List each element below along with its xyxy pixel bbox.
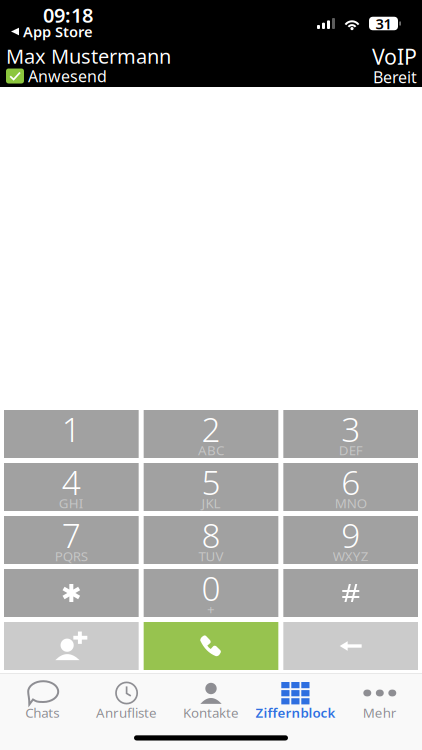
staticText: Ziffernblock — [255, 704, 335, 721]
staticText: Max Mustermann — [6, 43, 171, 69]
staticText: 09:18 — [43, 2, 93, 28]
button[interactable]: Delete — [283, 622, 418, 670]
button[interactable]: 0 — [144, 569, 278, 617]
button[interactable]: 3 — [283, 410, 418, 458]
staticText: 3 — [341, 407, 360, 451]
staticText: JKL — [201, 494, 220, 512]
staticText: VoIP — [372, 42, 417, 71]
staticText: Anwesend — [28, 65, 107, 87]
staticText: 6 — [341, 460, 360, 504]
staticText: TUV — [198, 547, 223, 565]
staticText: Kontakte — [183, 704, 239, 721]
button[interactable]: Kontakte — [169, 673, 253, 721]
button[interactable]: Add contact — [4, 622, 139, 670]
staticText: WXYZ — [333, 547, 369, 565]
button[interactable]: 7 — [4, 516, 139, 564]
staticText: Mehr — [363, 704, 397, 721]
staticText: GHI — [59, 494, 84, 512]
staticText: MNO — [335, 494, 367, 512]
button[interactable]: Anrufliste — [84, 673, 169, 721]
staticText: 31 — [375, 14, 391, 33]
button[interactable]: 6 — [283, 463, 418, 511]
staticText: Bereit — [373, 66, 417, 88]
staticText: DEF — [339, 441, 363, 459]
staticText: 2 — [201, 407, 220, 451]
staticText: 0 — [201, 566, 220, 610]
button[interactable]: Chats — [0, 673, 84, 721]
button[interactable]: Mehr — [338, 673, 422, 721]
staticText: 8 — [201, 513, 220, 557]
button[interactable]: 2 — [144, 410, 278, 458]
button[interactable]: Ziffernblock — [253, 673, 338, 721]
button[interactable]: 8 — [144, 516, 278, 564]
staticText: 7 — [62, 513, 81, 557]
button[interactable]: 9 — [283, 516, 418, 564]
staticText: 5 — [201, 460, 220, 504]
staticText: Chats — [25, 704, 59, 721]
staticText: 1 — [62, 407, 81, 451]
button[interactable]: 1 — [4, 410, 139, 458]
button[interactable]: Star — [4, 569, 139, 617]
staticText: PQRS — [55, 547, 88, 565]
button[interactable]: Call — [144, 622, 278, 670]
button[interactable]: Pound — [283, 569, 418, 617]
button[interactable]: 4 — [4, 463, 139, 511]
button[interactable]: 5 — [144, 463, 278, 511]
staticText: ABC — [198, 441, 224, 459]
staticText: App Store — [23, 22, 93, 41]
staticText: Anrufliste — [96, 704, 157, 721]
staticText: 4 — [62, 460, 81, 504]
staticText: + — [207, 600, 215, 618]
staticText: 9 — [341, 513, 360, 557]
